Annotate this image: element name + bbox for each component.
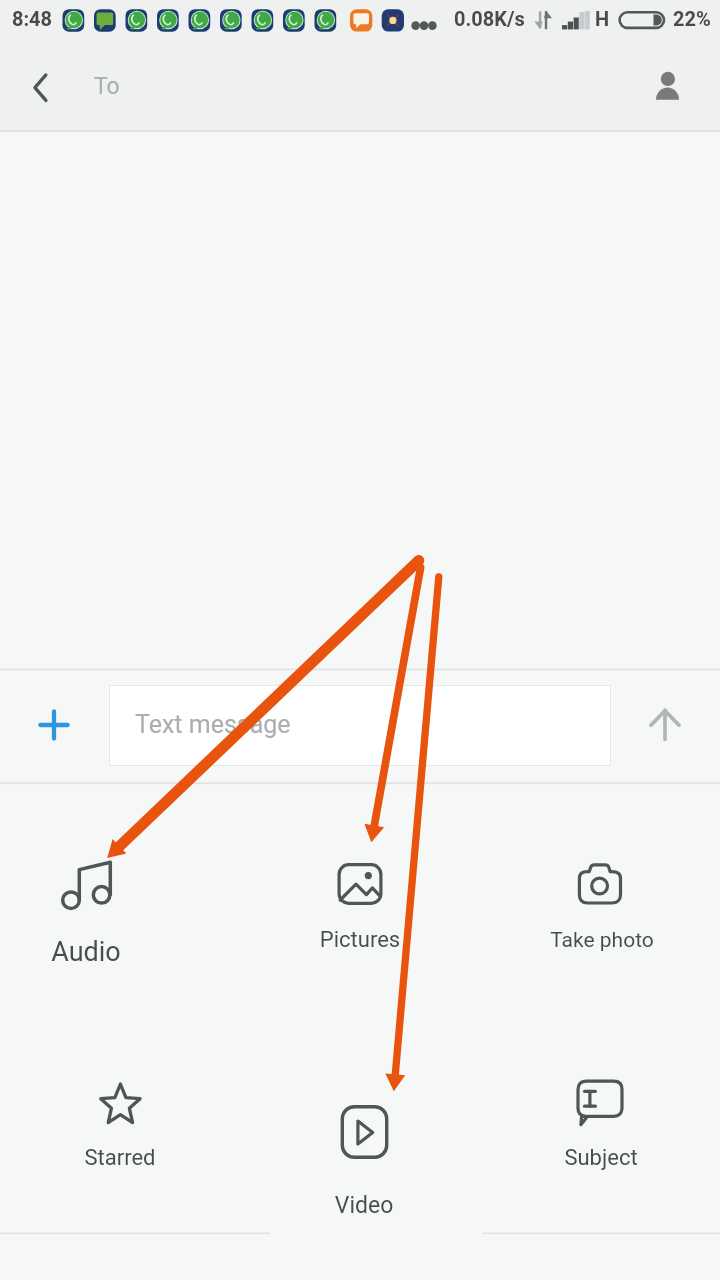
staticText: Text message xyxy=(135,710,291,739)
staticText: H xyxy=(595,7,610,30)
staticText: Audio xyxy=(0,936,206,968)
staticText: Video xyxy=(244,1192,484,1219)
button[interactable]: Text message xyxy=(109,685,611,766)
staticText: 8:48 xyxy=(12,7,53,30)
button[interactable]: Take photo xyxy=(480,810,720,1010)
button[interactable]: Audio xyxy=(0,810,240,1010)
button[interactable]: Starred xyxy=(0,1030,240,1230)
button[interactable]: Video xyxy=(240,1030,480,1265)
button[interactable]: Add attachment xyxy=(24,695,84,755)
staticText: Starred xyxy=(0,1145,240,1171)
staticText: To xyxy=(94,73,120,100)
button[interactable]: Send xyxy=(635,695,695,755)
staticText: Take photo xyxy=(482,928,720,953)
button[interactable]: Subject xyxy=(480,1030,720,1230)
staticText: 0.08K/s xyxy=(454,7,525,30)
button[interactable]: Back xyxy=(10,58,70,118)
button[interactable]: Pictures xyxy=(240,810,480,1010)
staticText: 22% xyxy=(673,7,711,30)
button[interactable]: Choose contact xyxy=(638,58,698,118)
staticText: Pictures xyxy=(240,927,480,953)
staticText: Subject xyxy=(481,1145,720,1171)
